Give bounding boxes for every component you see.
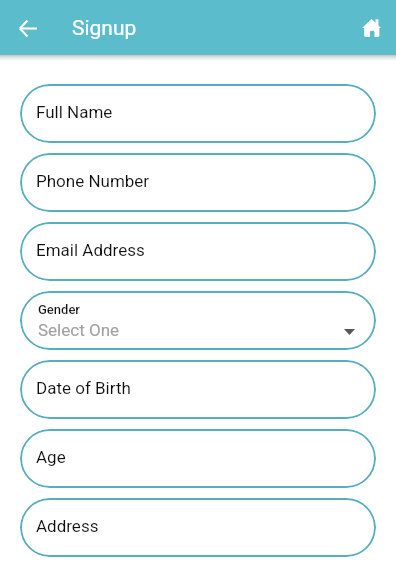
button[interactable]: Address [20, 498, 376, 557]
button[interactable]: Full Name [20, 84, 376, 143]
staticText: Date of Birth [36, 378, 131, 398]
staticText: Age [36, 447, 66, 467]
button[interactable]: Age [20, 429, 376, 488]
button[interactable]: Home [353, 10, 389, 46]
staticText: Signup [72, 16, 137, 41]
staticText: Select One [38, 320, 120, 340]
staticText: Phone Number [36, 171, 150, 191]
button[interactable]: Phone Number [20, 153, 376, 212]
button[interactable]: Email Address [20, 222, 376, 281]
staticText: Email Address [36, 240, 145, 260]
staticText: Gender [38, 302, 80, 317]
button[interactable]: Back [10, 10, 46, 46]
staticText: Address [36, 516, 99, 536]
button[interactable]: Date of Birth [20, 360, 376, 419]
staticText: Full Name [36, 102, 113, 122]
button[interactable]: Gender [20, 291, 376, 350]
